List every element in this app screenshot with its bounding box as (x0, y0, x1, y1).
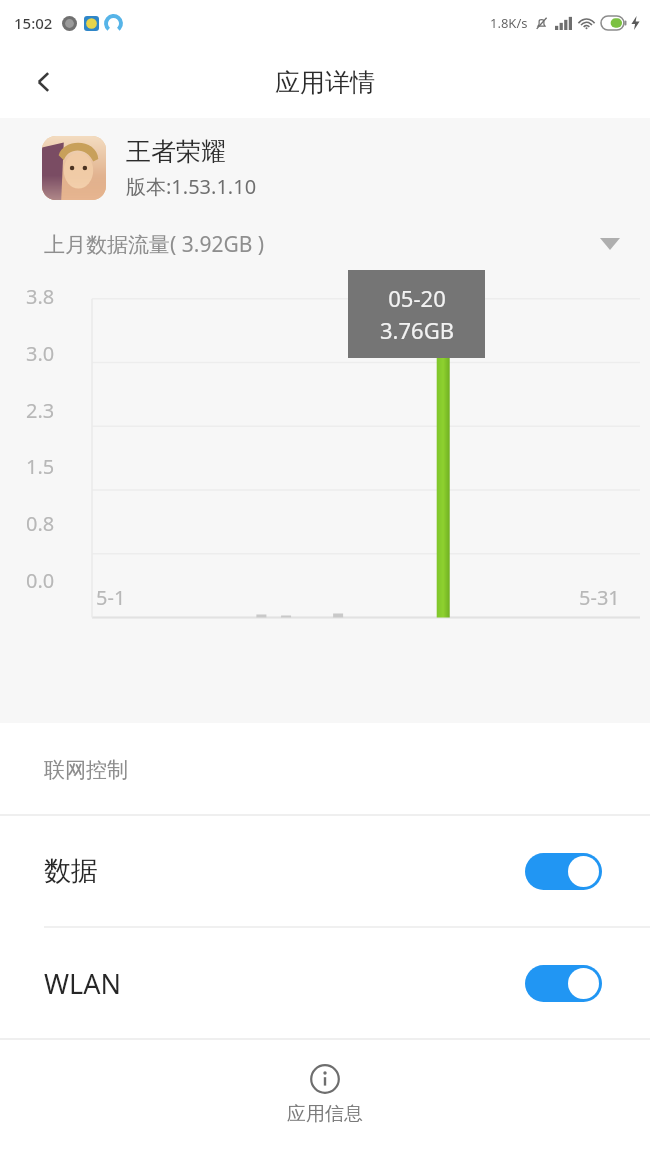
button[interactable]: 数据 (0, 816, 650, 926)
staticText: 2.3 (26, 397, 55, 424)
button[interactable]: 上月数据流量( 3.92GB ) (0, 222, 650, 266)
staticText: 应用详情 (275, 67, 375, 98)
button[interactable]: 应用信息 (287, 1064, 363, 1126)
button[interactable]: WLAN (0, 928, 650, 1038)
staticText: 应用信息 (287, 1102, 363, 1126)
staticText: 1.5 (26, 453, 55, 480)
staticText: 05-20 (388, 283, 446, 313)
staticText: 版本:1.53.1.10 (126, 173, 257, 200)
staticText: 0.0 (26, 567, 55, 594)
staticText: 联网控制 (44, 757, 128, 783)
button[interactable]: Back (18, 56, 70, 108)
staticText: 王者荣耀 (126, 136, 226, 167)
staticText: 3.0 (26, 340, 55, 367)
staticText: 上月数据流量( 3.92GB ) (44, 230, 265, 259)
staticText: 0.8 (26, 510, 55, 537)
staticText: 5-31 (579, 584, 620, 611)
button[interactable]: 王者荣耀 (42, 136, 650, 200)
staticText: 5-1 (96, 584, 126, 611)
staticText: 数据 (44, 854, 98, 888)
staticText: 1.8K/s (490, 14, 528, 32)
staticText: 3.76GB (380, 315, 454, 345)
staticText: 3.8 (26, 283, 55, 310)
staticText: 15:02 (14, 13, 53, 33)
staticText: WLAN (44, 965, 122, 1002)
